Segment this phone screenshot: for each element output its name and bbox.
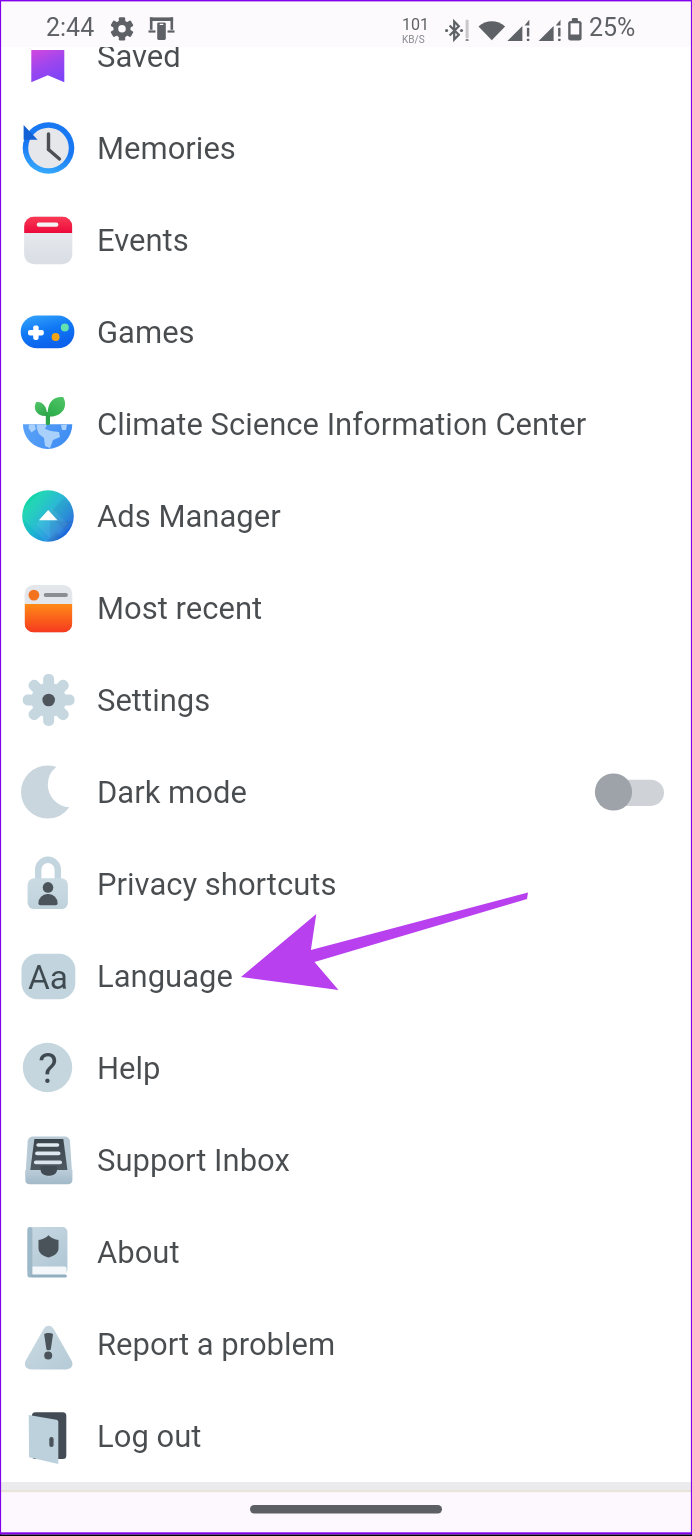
button[interactable]: Most recent <box>0 562 692 654</box>
staticText: Dark mode <box>97 774 247 810</box>
staticText: KB/S <box>402 34 425 46</box>
staticText: Ads Manager <box>97 498 281 534</box>
button[interactable]: Report a problem <box>0 1298 692 1390</box>
staticText: Saved <box>97 38 181 74</box>
staticText: Events <box>97 222 189 258</box>
staticText: ? <box>38 1044 58 1093</box>
staticText: Memories <box>97 130 236 166</box>
staticText: Log out <box>97 1418 202 1454</box>
staticText: Aa <box>28 958 69 997</box>
staticText: Report a problem <box>97 1326 336 1362</box>
button[interactable]: Games <box>0 286 692 378</box>
staticText: Help <box>97 1050 161 1086</box>
staticText: Privacy shortcuts <box>97 866 337 902</box>
button[interactable]: About <box>0 1206 692 1298</box>
staticText: Support Inbox <box>97 1142 290 1178</box>
button[interactable]: Ads Manager <box>0 470 692 562</box>
button[interactable]: Privacy shortcuts <box>0 838 692 930</box>
button[interactable]: Dark mode toggle, off <box>593 772 666 812</box>
staticText: Games <box>97 314 195 350</box>
button[interactable]: Events <box>0 194 692 286</box>
staticText: 2:44 <box>46 13 95 42</box>
staticText: Most recent <box>97 590 263 626</box>
button[interactable]: Aa <box>0 930 692 1022</box>
staticText: 101 <box>402 15 429 34</box>
button[interactable]: Dark mode <box>0 746 692 838</box>
button[interactable]: Log out <box>0 1390 692 1482</box>
button[interactable]: Memories <box>0 102 692 194</box>
staticText: 25% <box>589 13 636 42</box>
staticText: Settings <box>97 682 211 718</box>
staticText: Climate Science Information Center <box>97 406 587 442</box>
staticText: About <box>97 1234 180 1270</box>
button[interactable]: Climate Science Information Center <box>0 378 692 470</box>
staticText: Language <box>97 958 233 994</box>
button[interactable]: Saved <box>0 10 692 102</box>
button[interactable]: ? <box>0 1022 692 1114</box>
button[interactable]: Support Inbox <box>0 1114 692 1206</box>
button[interactable]: Settings <box>0 654 692 746</box>
